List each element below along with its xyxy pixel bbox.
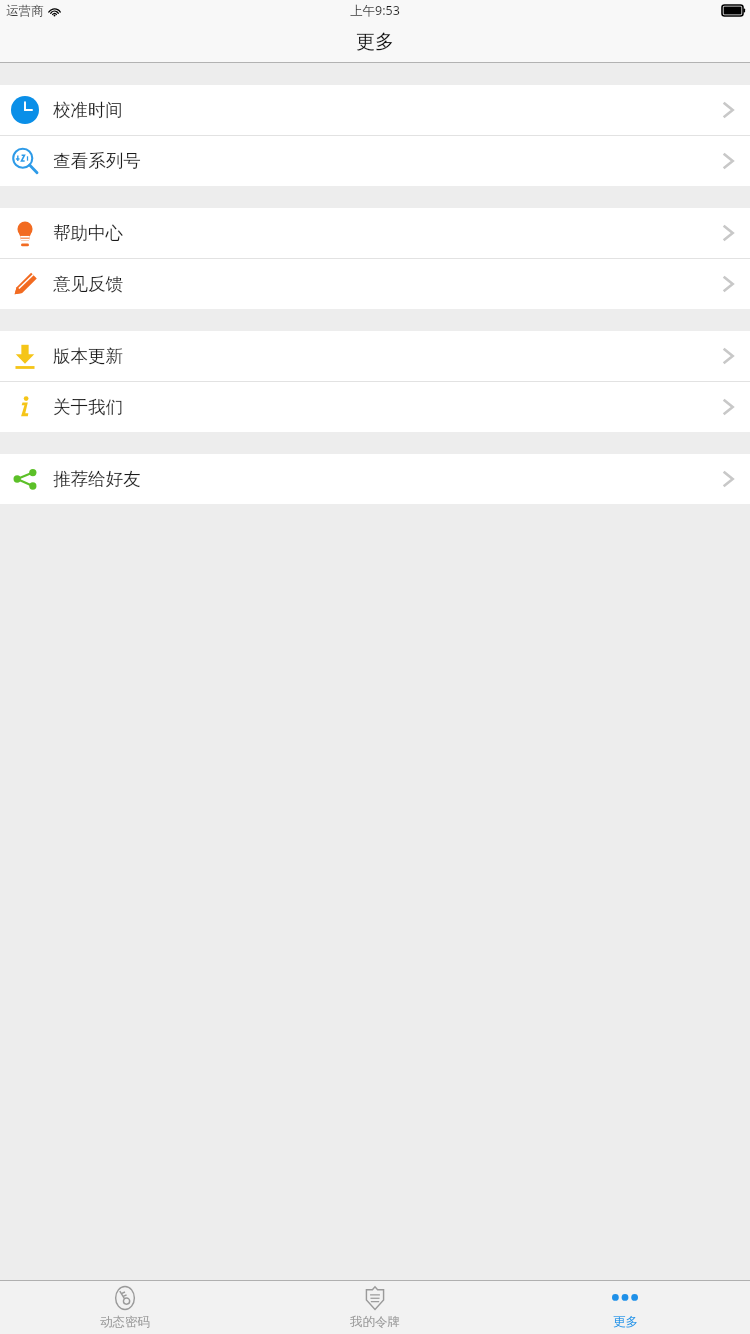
staticText: 版本更新 — [53, 345, 123, 367]
staticText: 推荐给好友 — [53, 468, 141, 490]
button[interactable]: 版本更新 — [0, 331, 750, 381]
button[interactable]: 关于我们 — [0, 382, 750, 432]
staticText: 运营商 — [6, 3, 44, 19]
button[interactable]: 动态密码 — [0, 1281, 250, 1334]
staticText: 帮助中心 — [53, 222, 123, 244]
button[interactable]: 我的令牌 — [250, 1281, 500, 1334]
button[interactable]: 查看系列号 — [0, 136, 750, 186]
button[interactable]: 更多 — [500, 1281, 750, 1334]
staticText: 上午9:53 — [350, 2, 400, 19]
button[interactable]: 帮助中心 — [0, 208, 750, 258]
staticText: 关于我们 — [53, 396, 123, 418]
staticText: 意见反馈 — [53, 273, 123, 295]
staticText: 查看系列号 — [53, 150, 141, 172]
staticText: 动态密码 — [100, 1314, 150, 1330]
staticText: 我的令牌 — [350, 1314, 400, 1330]
staticText: 校准时间 — [53, 99, 123, 121]
staticText: 更多 — [613, 1314, 638, 1330]
staticText: 更多 — [356, 30, 394, 54]
button[interactable]: 校准时间 — [0, 85, 750, 135]
button[interactable]: 推荐给好友 — [0, 454, 750, 504]
button[interactable]: 意见反馈 — [0, 259, 750, 309]
